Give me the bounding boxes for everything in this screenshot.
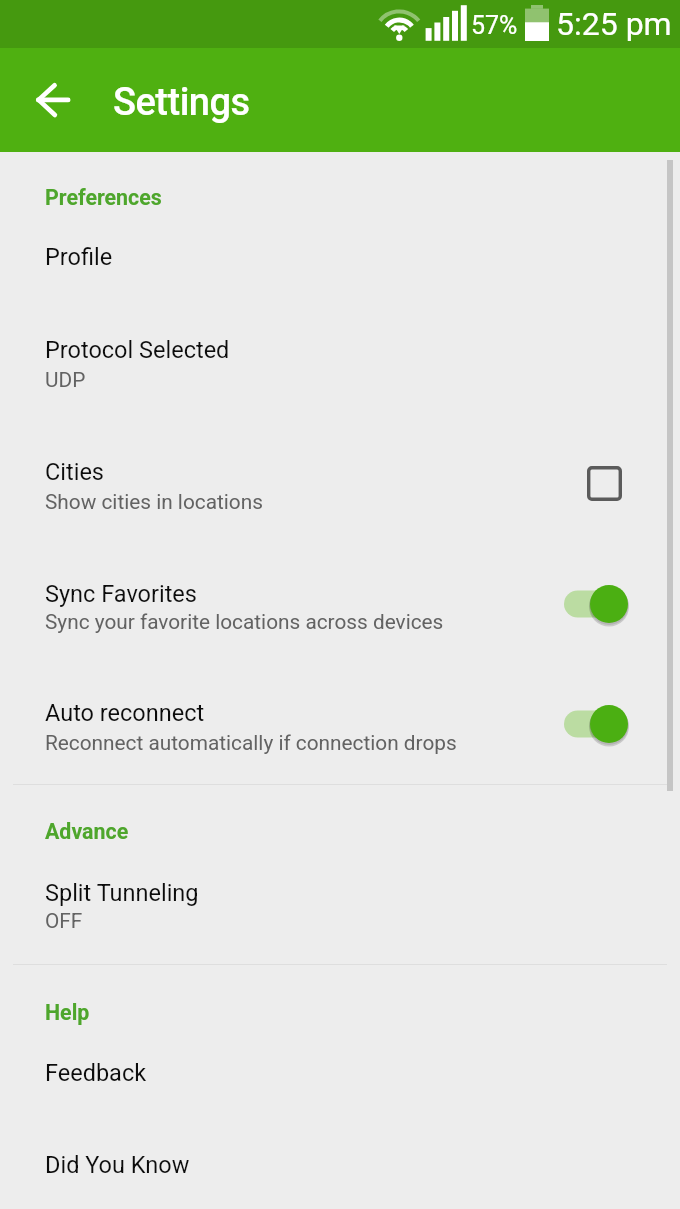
button[interactable]: Auto reconnect [0,680,680,772]
button[interactable]: Protocol Selected [0,320,680,412]
button[interactable]: Back [8,55,96,143]
button[interactable]: Sync Favorites [0,560,680,652]
staticText: Sync your favorite locations across devi… [45,610,444,634]
staticText: Cities [45,458,105,486]
staticText: Help [45,1000,90,1025]
staticText: 57% [471,11,518,40]
button[interactable]: Did You Know [0,1130,680,1196]
staticText: UDP [45,368,86,392]
staticText: Show cities in locations [45,490,263,514]
staticText: Advance [45,819,129,844]
button[interactable]: Toggle [562,582,632,626]
staticText: Reconnect automatically if connection dr… [45,731,457,755]
staticText: Auto reconnect [45,699,205,727]
button[interactable]: Feedback [0,1040,680,1106]
button[interactable]: Profile [0,226,680,292]
button[interactable]: Split Tunneling [0,860,680,952]
staticText: Protocol Selected [45,336,230,364]
button[interactable]: Toggle [562,702,632,746]
staticText: Sync Favorites [45,580,197,608]
staticText: Feedback [45,1059,147,1087]
staticText: Split Tunneling [45,879,199,907]
staticText: Profile [45,243,113,271]
staticText: Preferences [45,185,162,210]
staticText: 5:25 pm [556,5,672,43]
button[interactable]: Cities [0,440,680,532]
staticText: Settings [113,80,250,125]
staticText: OFF [45,909,83,933]
button[interactable]: Show cities in locations checkbox [577,456,632,511]
staticText: Did You Know [45,1151,190,1179]
